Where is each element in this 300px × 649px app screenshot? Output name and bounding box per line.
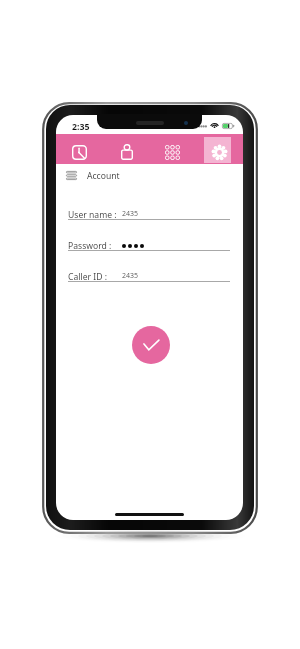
- staticText: Password :: [68, 240, 112, 252]
- staticText: Account: [87, 170, 120, 182]
- staticText: Caller ID :: [68, 271, 108, 283]
- button[interactable]: Keypad: [149, 134, 196, 164]
- button[interactable]: Account: [66, 164, 243, 186]
- staticText: 2435: [122, 209, 139, 219]
- staticText: 2:35: [72, 121, 90, 133]
- staticText: User name :: [68, 209, 117, 221]
- button[interactable]: Contacts: [102, 134, 149, 164]
- button[interactable]: Confirm: [132, 326, 170, 364]
- staticText: 2435: [122, 271, 139, 281]
- button[interactable]: Recents: [56, 134, 102, 164]
- button[interactable]: Settings: [196, 134, 243, 164]
